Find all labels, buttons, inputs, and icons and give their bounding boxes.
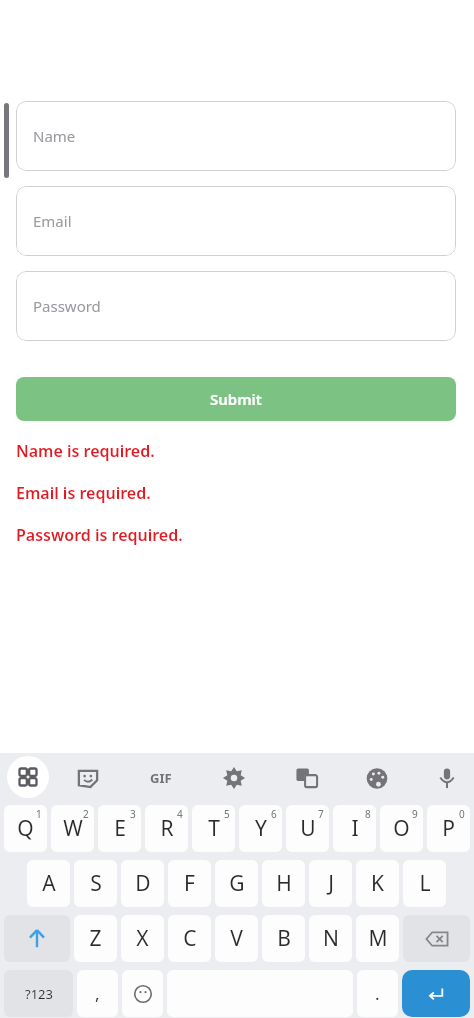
staticText: O <box>393 814 410 843</box>
button[interactable]: B <box>262 915 305 962</box>
staticText: T <box>208 814 220 843</box>
button[interactable]: U <box>286 805 329 852</box>
staticText: X <box>136 924 149 953</box>
button[interactable]: A <box>27 860 70 907</box>
button[interactable]: C <box>168 915 211 962</box>
staticText: Email is required. <box>16 482 151 504</box>
button[interactable]: O <box>380 805 423 852</box>
button[interactable]: T <box>192 805 235 852</box>
button[interactable]: Z <box>74 915 117 962</box>
button[interactable]: V <box>215 915 258 962</box>
staticText: Password is required. <box>16 524 183 546</box>
button[interactable]: D <box>121 860 164 907</box>
staticText: J <box>328 869 334 898</box>
staticText: E <box>114 814 126 843</box>
button[interactable]: GIF <box>141 758 181 798</box>
button[interactable]: S <box>74 860 117 907</box>
staticText: C <box>183 924 197 953</box>
button[interactable]: Symbols <box>4 970 73 1017</box>
button[interactable]: K <box>356 860 399 907</box>
staticText: W <box>63 814 83 843</box>
button[interactable]: Submit <box>16 377 456 421</box>
staticText: R <box>160 814 174 843</box>
button[interactable]: Q <box>4 805 47 852</box>
staticText: L <box>419 869 431 898</box>
button[interactable]: I <box>333 805 376 852</box>
staticText: 9 <box>412 807 418 821</box>
staticText: 2 <box>83 807 89 821</box>
staticText: U <box>300 814 316 843</box>
button[interactable]: Comma <box>77 970 118 1017</box>
staticText: Y <box>255 814 267 843</box>
staticText: G <box>229 869 245 898</box>
button[interactable]: Y <box>239 805 282 852</box>
button[interactable]: H <box>262 860 305 907</box>
staticText: 6 <box>271 807 277 821</box>
button[interactable]: Emoji <box>122 970 163 1017</box>
staticText: D <box>135 869 151 898</box>
button[interactable]: Backspace <box>403 915 470 962</box>
staticText: Q <box>17 814 34 843</box>
staticText: K <box>371 869 384 898</box>
staticText: M <box>368 924 388 953</box>
staticText: 0 <box>459 807 465 821</box>
staticText: 5 <box>224 807 230 821</box>
button[interactable]: Stickers <box>68 758 108 798</box>
button[interactable]: J <box>309 860 352 907</box>
staticText: 3 <box>130 807 136 821</box>
staticText: Password <box>33 296 101 316</box>
button[interactable]: W <box>51 805 94 852</box>
staticText: Z <box>89 924 102 953</box>
button[interactable]: L <box>403 860 446 907</box>
staticText: . <box>375 982 380 1005</box>
staticText: GIF <box>150 769 172 787</box>
button[interactable]: X <box>121 915 164 962</box>
staticText: Name is required. <box>16 440 155 462</box>
button[interactable]: Keyboard modes <box>7 756 49 798</box>
button[interactable]: Enter <box>402 970 470 1017</box>
staticText: N <box>323 924 339 953</box>
staticText: ?123 <box>25 985 53 1003</box>
staticText: 7 <box>318 807 324 821</box>
staticText: 1 <box>36 807 42 821</box>
staticText: 8 <box>365 807 371 821</box>
staticText: 4 <box>177 807 183 821</box>
staticText: I <box>351 814 359 843</box>
button[interactable]: Period <box>357 970 398 1017</box>
staticText: A <box>42 869 56 898</box>
button[interactable]: P <box>427 805 470 852</box>
button[interactable]: Email <box>16 186 456 256</box>
button[interactable]: M <box>356 915 399 962</box>
staticText: Name <box>33 126 76 146</box>
staticText: V <box>230 924 243 953</box>
button[interactable]: Translate <box>287 758 327 798</box>
staticText: Email <box>33 211 72 231</box>
staticText: B <box>277 924 291 953</box>
staticText: S <box>90 869 102 898</box>
staticText: , <box>95 982 100 1005</box>
button[interactable]: R <box>145 805 188 852</box>
button[interactable]: Voice input <box>427 758 467 798</box>
button[interactable]: Themes <box>357 758 397 798</box>
button[interactable]: Settings <box>214 758 254 798</box>
button[interactable]: Name <box>16 101 456 171</box>
staticText: F <box>184 869 195 898</box>
staticText: P <box>442 814 455 843</box>
button[interactable]: Shift <box>4 915 70 962</box>
button[interactable]: Password <box>16 271 456 341</box>
staticText: H <box>276 869 292 898</box>
staticText: Submit <box>210 389 262 409</box>
button[interactable]: G <box>215 860 258 907</box>
button[interactable]: F <box>168 860 211 907</box>
button[interactable]: E <box>98 805 141 852</box>
button[interactable]: N <box>309 915 352 962</box>
